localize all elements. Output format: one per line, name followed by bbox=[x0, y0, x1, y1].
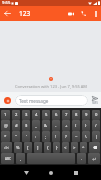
button[interactable]: ) bbox=[82, 120, 90, 131]
button[interactable]: 2 bbox=[12, 110, 20, 120]
button[interactable]: " bbox=[12, 131, 20, 142]
staticText: # bbox=[15, 123, 18, 129]
button[interactable]: ( bbox=[72, 120, 80, 131]
staticText: < bbox=[64, 145, 67, 151]
staticText: Conversation with 123 - Jun 7, 9:55 AM bbox=[15, 84, 87, 89]
staticText: 9:55 bbox=[2, 0, 11, 6]
button[interactable]: ABC bbox=[1, 153, 14, 164]
button[interactable]: More options bbox=[90, 8, 101, 19]
staticText: 0 bbox=[95, 112, 98, 118]
button[interactable]: ? bbox=[62, 131, 70, 142]
button[interactable]: Navigate up bbox=[0, 6, 15, 21]
button[interactable]: del bbox=[89, 142, 100, 153]
button[interactable]: Home bbox=[44, 166, 58, 180]
staticText: + bbox=[65, 123, 68, 129]
staticText: \ bbox=[85, 134, 87, 140]
button[interactable]: ; bbox=[42, 131, 50, 142]
staticText: / bbox=[95, 123, 97, 129]
staticText: % bbox=[16, 145, 20, 151]
staticText: , bbox=[20, 156, 22, 162]
staticText: _ bbox=[35, 123, 37, 129]
button[interactable]: ^ bbox=[80, 142, 87, 153]
button[interactable]: / bbox=[92, 120, 100, 131]
staticText: 7 bbox=[65, 112, 68, 118]
staticText: 123 bbox=[19, 9, 31, 18]
staticText: 8 bbox=[75, 112, 78, 118]
button[interactable]: 4 bbox=[32, 110, 40, 120]
button[interactable]: ~ bbox=[72, 131, 80, 142]
button[interactable]: 8 bbox=[72, 110, 80, 120]
staticText: ! bbox=[55, 134, 57, 140]
button[interactable]: ' bbox=[22, 131, 30, 142]
button[interactable]: _ bbox=[32, 120, 40, 131]
button[interactable]: 9 bbox=[82, 110, 90, 120]
button[interactable]: } bbox=[53, 142, 60, 153]
button[interactable]: & bbox=[42, 120, 50, 131]
staticText: ^ bbox=[82, 145, 85, 151]
button[interactable]: | bbox=[92, 131, 100, 142]
button[interactable]: @ bbox=[1, 120, 10, 131]
staticText: SMS bbox=[92, 101, 98, 105]
staticText: > bbox=[73, 145, 76, 151]
button[interactable]: { bbox=[44, 142, 51, 153]
staticText: & bbox=[44, 123, 48, 129]
button[interactable]: Recent apps bbox=[69, 166, 83, 180]
staticText: 6 bbox=[55, 112, 58, 118]
staticText: 9 bbox=[85, 112, 88, 118]
staticText: ] bbox=[37, 145, 39, 151]
staticText: ABC bbox=[5, 157, 11, 161]
staticText: | bbox=[95, 134, 98, 140]
button[interactable]: Call bbox=[77, 7, 90, 20]
button[interactable]: < bbox=[62, 142, 69, 153]
button[interactable]: : bbox=[32, 131, 40, 142]
button[interactable]: Video call bbox=[64, 7, 77, 20]
button[interactable]: 6 bbox=[52, 110, 60, 120]
staticText: @ bbox=[4, 123, 8, 129]
button[interactable]: 5 bbox=[42, 110, 50, 120]
staticText: * bbox=[4, 134, 7, 140]
staticText: ? bbox=[65, 134, 67, 140]
button[interactable]: ! bbox=[52, 131, 60, 142]
staticText: . bbox=[81, 156, 83, 162]
staticText: { bbox=[47, 145, 49, 151]
button[interactable]: ] bbox=[34, 142, 42, 153]
button[interactable]: \ bbox=[82, 131, 90, 142]
button[interactable]: , bbox=[16, 153, 25, 164]
staticText: [ bbox=[27, 145, 29, 151]
button[interactable]: * bbox=[1, 131, 10, 142]
staticText: " bbox=[15, 134, 17, 140]
button[interactable]: % bbox=[14, 142, 22, 153]
button[interactable]: 0 bbox=[92, 110, 100, 120]
button[interactable]: space bbox=[27, 153, 75, 164]
button[interactable]: - bbox=[52, 120, 60, 131]
button[interactable]: =\< bbox=[1, 142, 12, 153]
button[interactable]: # bbox=[12, 120, 20, 131]
staticText: ; bbox=[45, 134, 47, 140]
staticText: 4 bbox=[35, 112, 38, 118]
staticText: 5 bbox=[45, 112, 48, 118]
staticText: 3 bbox=[25, 112, 28, 118]
staticText: =\< bbox=[4, 146, 9, 150]
staticText: ' bbox=[26, 134, 27, 140]
staticText: 1 bbox=[4, 112, 7, 118]
button[interactable]: Text message bbox=[15, 95, 88, 106]
button[interactable]: + bbox=[62, 120, 70, 131]
button[interactable]: $ bbox=[22, 120, 30, 131]
staticText: - bbox=[55, 123, 57, 129]
button[interactable]: Attach bbox=[4, 97, 11, 104]
staticText: ~ bbox=[75, 134, 78, 140]
button[interactable]: 3 bbox=[22, 110, 30, 120]
button[interactable]: 7 bbox=[62, 110, 70, 120]
button[interactable]: Send SMS bbox=[88, 92, 101, 108]
staticText: ( bbox=[75, 123, 77, 129]
button[interactable]: [ bbox=[24, 142, 32, 153]
button[interactable]: 1 bbox=[1, 110, 10, 120]
button[interactable]: enter bbox=[88, 153, 100, 164]
button[interactable]: > bbox=[71, 142, 78, 153]
button[interactable]: . bbox=[77, 153, 86, 164]
button[interactable]: Back bbox=[19, 166, 33, 180]
staticText: Text message bbox=[19, 98, 49, 104]
staticText: ) bbox=[85, 123, 87, 129]
staticText: $ bbox=[25, 123, 28, 129]
staticText: } bbox=[56, 145, 58, 151]
